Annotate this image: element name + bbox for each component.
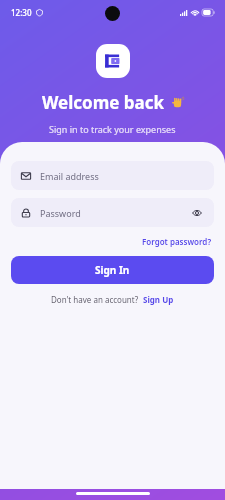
button[interactable]: Password	[11, 198, 214, 227]
button[interactable]: Sign In	[11, 256, 214, 284]
staticText: Sign In	[95, 263, 130, 277]
staticText: Email address	[40, 170, 99, 182]
staticText: Forgot password?	[142, 236, 212, 247]
staticText: 12:30	[11, 7, 32, 18]
staticText: Don't have an account?	[51, 294, 139, 305]
staticText: Sign in to track your expenses	[49, 123, 176, 135]
staticText: Sign Up	[143, 294, 174, 305]
button[interactable]: Sign Up	[143, 294, 174, 305]
button[interactable]: Show password	[190, 206, 204, 220]
button[interactable]: Email address	[11, 161, 214, 190]
staticText: Password	[40, 207, 81, 219]
staticText: Welcome back	[42, 91, 165, 114]
button[interactable]: Forgot password?	[140, 234, 214, 249]
